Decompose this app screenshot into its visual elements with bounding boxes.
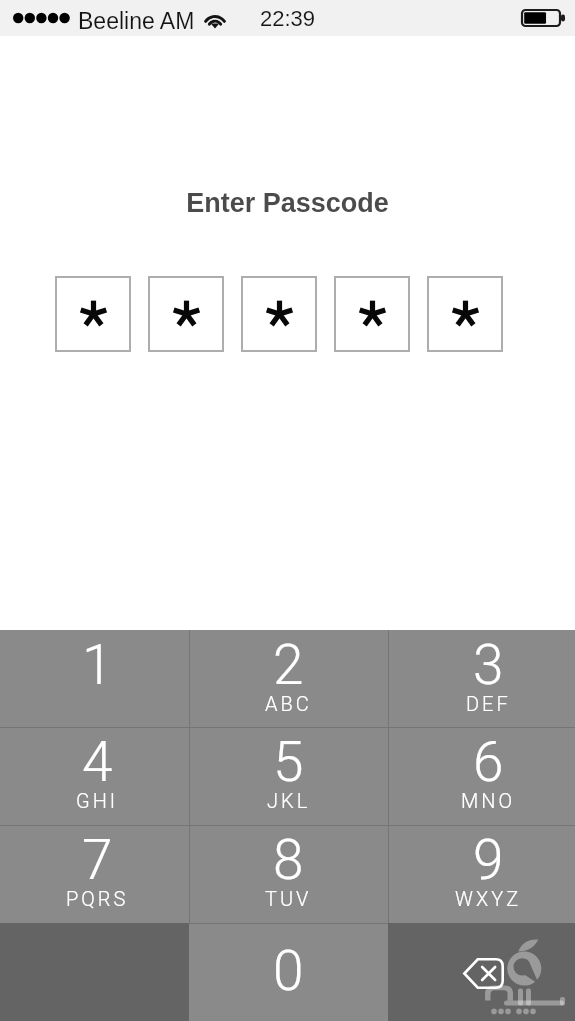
staticText: JKL bbox=[267, 789, 311, 812]
staticText: 9 bbox=[473, 828, 504, 892]
button[interactable]: 9 bbox=[388, 825, 575, 923]
staticText: DEF bbox=[466, 692, 511, 715]
staticText: 5 bbox=[273, 730, 304, 794]
button[interactable] bbox=[334, 276, 410, 352]
button[interactable]: 2 bbox=[189, 630, 388, 727]
button[interactable]: 4 bbox=[0, 727, 189, 825]
button[interactable]: 5 bbox=[189, 727, 388, 825]
staticText: 2 bbox=[273, 633, 304, 697]
staticText: WXYZ bbox=[455, 887, 522, 910]
staticText: MNO bbox=[461, 789, 516, 812]
staticText: 3 bbox=[473, 633, 504, 697]
staticText: 8 bbox=[273, 828, 304, 892]
staticText: 22:39 bbox=[260, 6, 316, 31]
staticText: TUV bbox=[265, 887, 312, 910]
button[interactable] bbox=[148, 276, 224, 352]
staticText: Beeline AM bbox=[78, 8, 195, 34]
button[interactable] bbox=[427, 276, 503, 352]
button[interactable]: 6 bbox=[388, 727, 575, 825]
staticText: 7 bbox=[82, 828, 113, 892]
staticText: GHI bbox=[76, 789, 119, 812]
staticText: 4 bbox=[82, 730, 113, 794]
button[interactable]: Delete bbox=[388, 923, 575, 1021]
button[interactable]: 1 bbox=[0, 630, 189, 727]
button[interactable] bbox=[55, 276, 131, 352]
staticText: 6 bbox=[473, 730, 504, 794]
staticText: Enter Passcode bbox=[186, 188, 389, 218]
button[interactable]: 7 bbox=[0, 825, 189, 923]
staticText: 0 bbox=[273, 939, 304, 1003]
staticText: PQRS bbox=[66, 887, 129, 910]
button[interactable]: 0 bbox=[189, 923, 388, 1021]
button[interactable]: 8 bbox=[189, 825, 388, 923]
staticText: ABC bbox=[265, 692, 312, 715]
staticText: 1 bbox=[82, 633, 113, 697]
button[interactable]: 3 bbox=[388, 630, 575, 727]
button[interactable] bbox=[241, 276, 317, 352]
